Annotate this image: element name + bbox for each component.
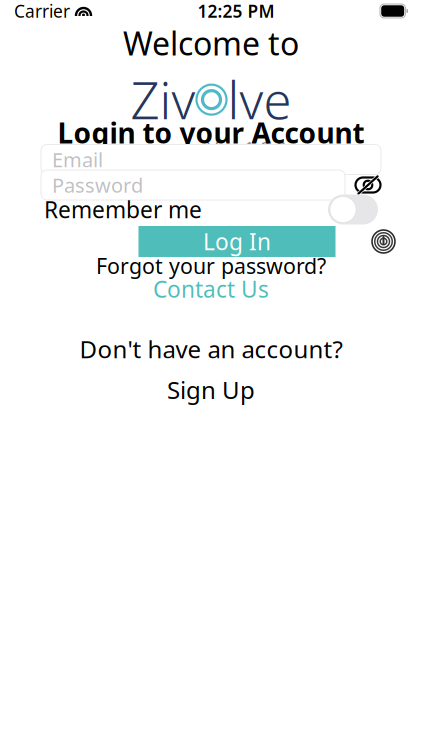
staticText: Contact Us	[153, 274, 269, 304]
button[interactable]: Password	[41, 170, 345, 200]
staticText: lve	[227, 66, 291, 133]
staticText: Password	[52, 172, 143, 198]
button[interactable]: Log In	[138, 226, 335, 257]
staticText: Ver. 1.0.0	[207, 135, 287, 160]
button[interactable]: Contact Us	[153, 274, 269, 304]
staticText: Carrier	[14, 0, 70, 22]
button[interactable]: Show password	[353, 172, 383, 198]
staticText: Remember me	[44, 194, 202, 225]
staticText: Sign Up	[167, 374, 255, 406]
staticText: Don't have an account?	[79, 333, 342, 365]
button[interactable]: Remember me	[328, 195, 378, 225]
staticText: Login to your Account	[57, 114, 364, 151]
button[interactable]: Sign in with fingerprint	[370, 228, 396, 254]
button[interactable]: Forgot your password?	[96, 251, 326, 280]
button[interactable]: Email	[41, 144, 381, 174]
button[interactable]: Sign Up	[167, 374, 255, 406]
staticText: 12:25 PM	[197, 0, 274, 22]
staticText: Forgot your password?	[96, 251, 326, 280]
staticText: Log In	[203, 226, 271, 256]
staticText: Email	[52, 146, 103, 173]
staticText: Welcome to	[123, 22, 299, 64]
staticText: Ziv	[130, 66, 195, 133]
